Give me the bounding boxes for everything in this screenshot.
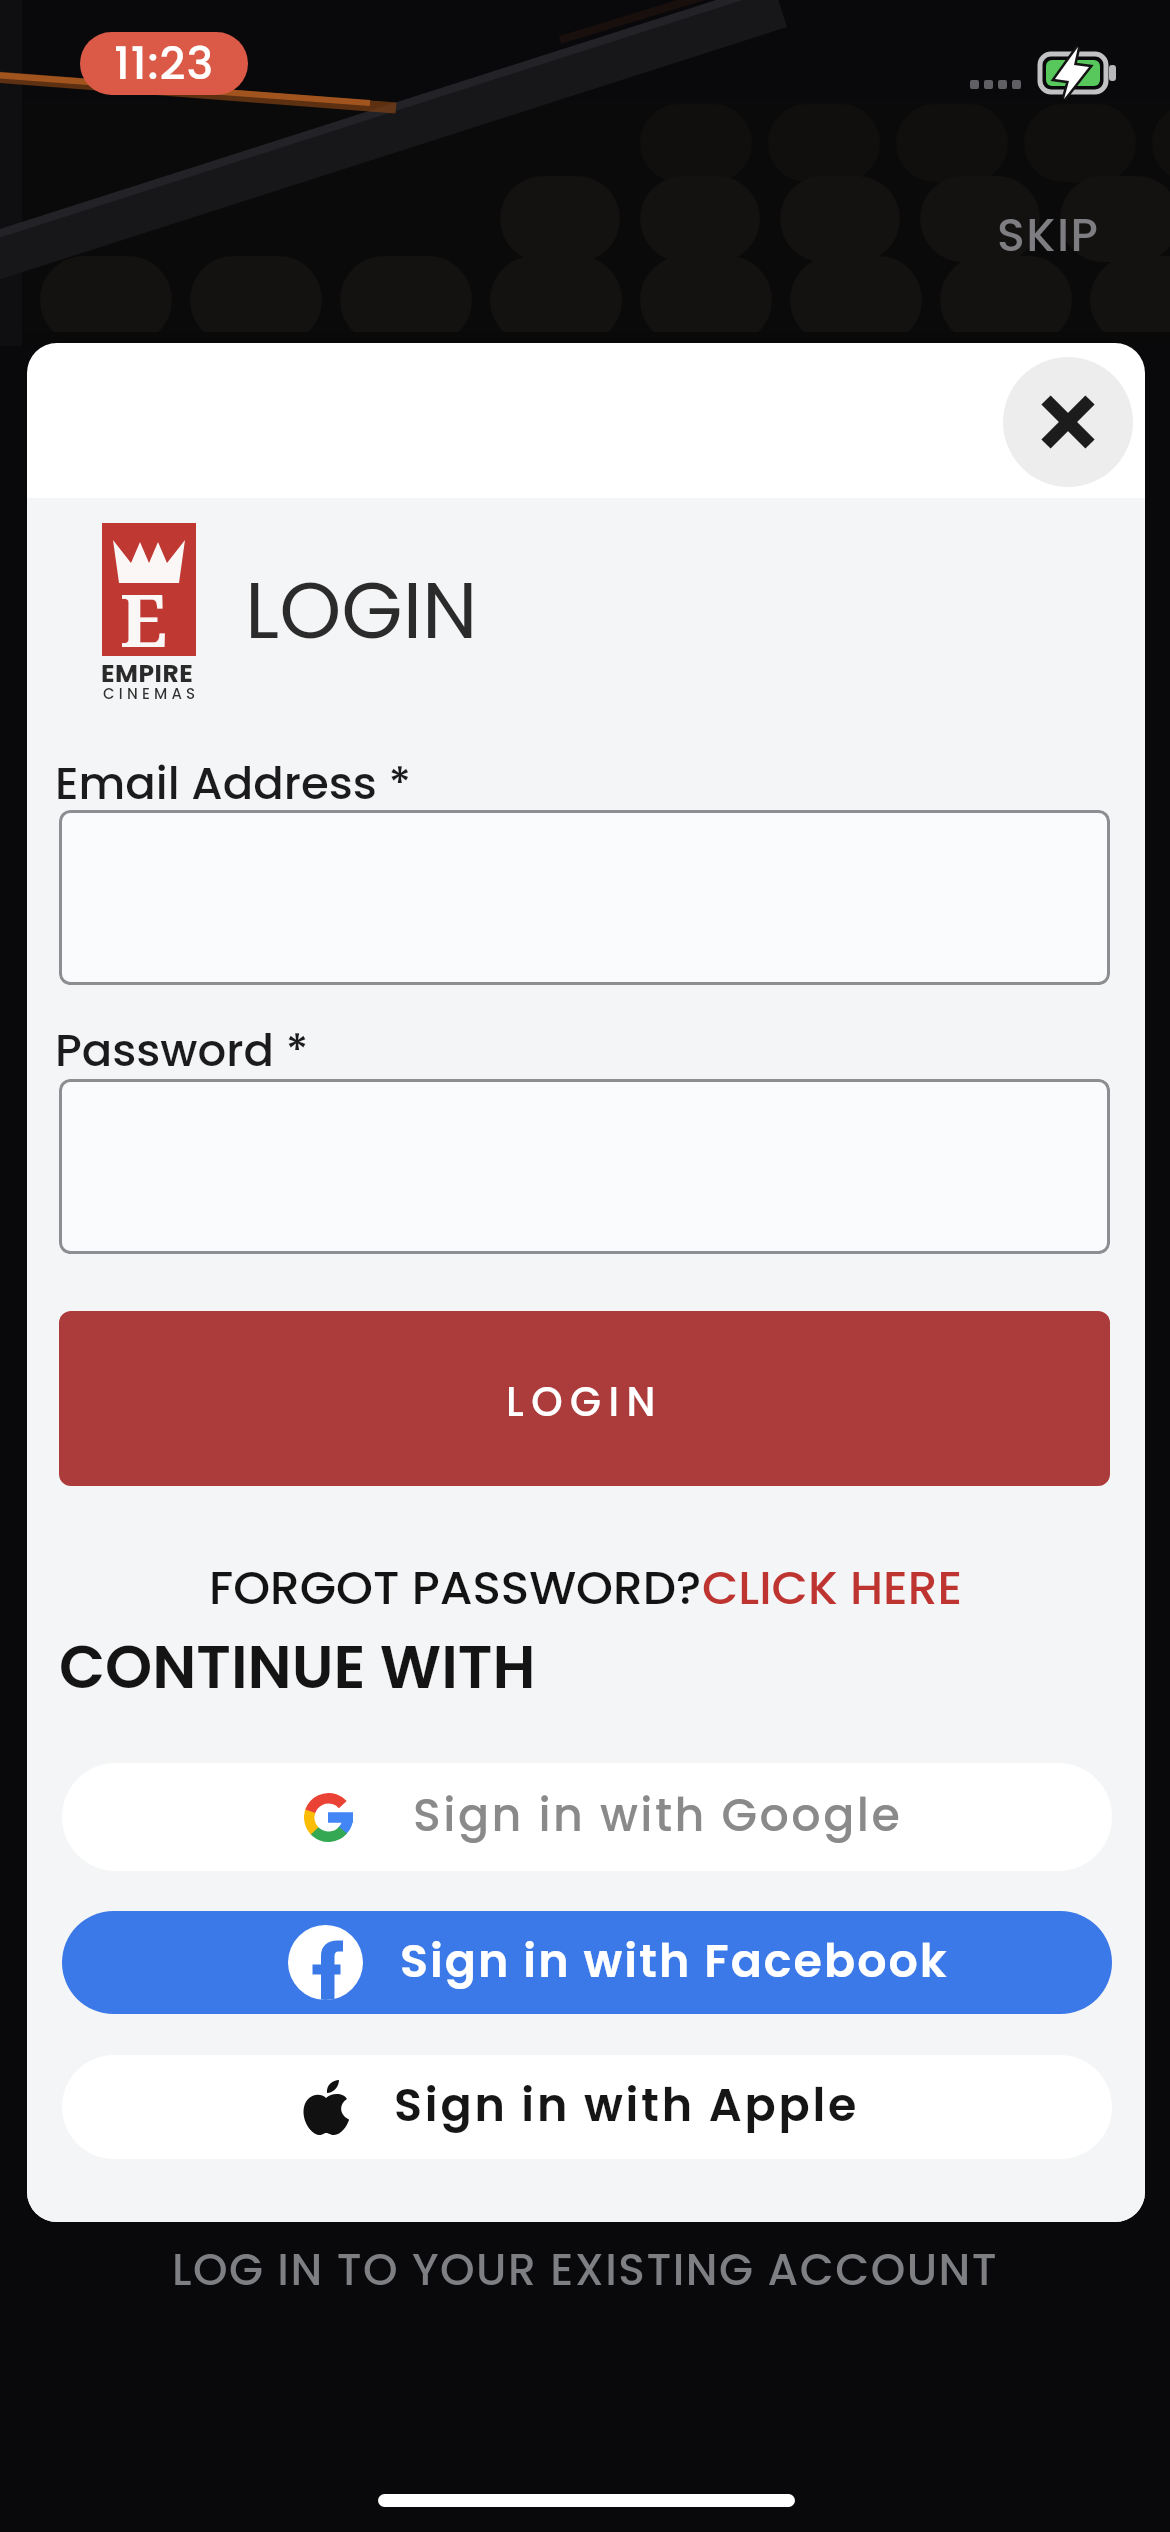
staticText: E (120, 570, 168, 668)
button[interactable]: Sign in with Apple (62, 2055, 1112, 2159)
staticText: FORGOT PASSWORD? (209, 1555, 702, 1621)
button[interactable]: CLICK HERE (702, 1555, 963, 1621)
staticText: CINEMAS (103, 683, 200, 704)
button[interactable]: Sign in with Google (62, 1763, 1112, 1871)
button[interactable]: SKIP (997, 203, 1100, 267)
button[interactable] (59, 810, 1110, 985)
button[interactable]: LOGIN (59, 1311, 1110, 1486)
staticText: 11:23 (114, 32, 215, 95)
staticText: Sign in with Facebook (400, 1929, 949, 1993)
staticText: LOG IN TO YOUR EXISTING ACCOUNT (0, 2239, 1170, 2301)
button[interactable] (1003, 357, 1133, 487)
staticText: Password * (55, 1019, 309, 1082)
button[interactable] (59, 1079, 1110, 1254)
button[interactable]: Sign in with Facebook (62, 1911, 1112, 2014)
staticText: Email Address * (55, 752, 412, 815)
staticText: EMPIRE (101, 656, 194, 691)
staticText: LOGIN (245, 555, 478, 666)
staticText: LOGIN (506, 1374, 663, 1430)
staticText: Sign in with Apple (394, 2073, 860, 2137)
staticText: CONTINUE WITH (59, 1625, 536, 1709)
staticText: Sign in with Google (413, 1783, 903, 1847)
